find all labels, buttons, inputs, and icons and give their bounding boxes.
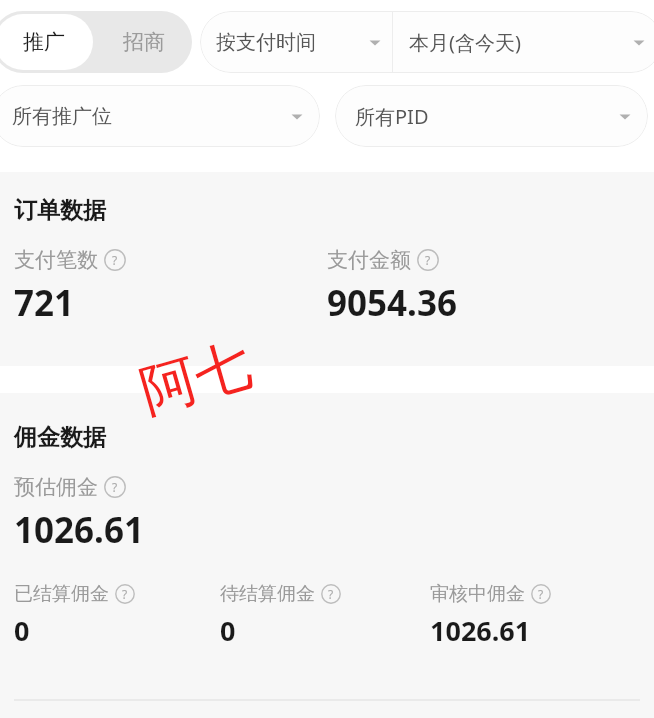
staticText: 推广 [23, 29, 65, 55]
staticText: 阿七 [132, 329, 260, 428]
staticText: 预估佣金 [14, 474, 98, 500]
staticText: ? [112, 479, 118, 495]
staticText: 支付笔数 [14, 247, 98, 273]
staticText: ? [425, 252, 431, 268]
staticText: 0 [14, 612, 30, 649]
staticText: 佣金数据 [14, 423, 106, 452]
staticText: 1026.61 [14, 506, 144, 554]
button[interactable]: 推广 [0, 14, 93, 70]
button[interactable]: 所有推广位 [0, 85, 320, 147]
staticText: 已结算佣金 [14, 582, 109, 606]
staticText: 0 [220, 612, 236, 649]
staticText: ? [538, 586, 544, 602]
staticText: 支付金额 [327, 247, 411, 273]
staticText: 所有PID [355, 103, 429, 130]
staticText: 本月(含今天) [409, 29, 521, 56]
button[interactable]: 所有PID [335, 85, 648, 147]
staticText: ? [122, 586, 128, 602]
staticText: 721 [14, 279, 75, 327]
staticText: ? [328, 586, 334, 602]
staticText: 9054.36 [327, 279, 457, 327]
staticText: 审核中佣金 [430, 582, 525, 606]
staticText: 1026.61 [430, 612, 531, 649]
staticText: 所有推广位 [12, 104, 112, 129]
staticText: ? [112, 252, 118, 268]
button[interactable]: 按支付时间 [200, 11, 392, 73]
button[interactable]: 本月(含今天) [393, 11, 654, 73]
button[interactable]: 招商 [96, 11, 192, 73]
staticText: 招商 [123, 29, 165, 55]
staticText: 按支付时间 [216, 30, 316, 55]
staticText: 待结算佣金 [220, 582, 315, 606]
staticText: 订单数据 [14, 196, 106, 225]
